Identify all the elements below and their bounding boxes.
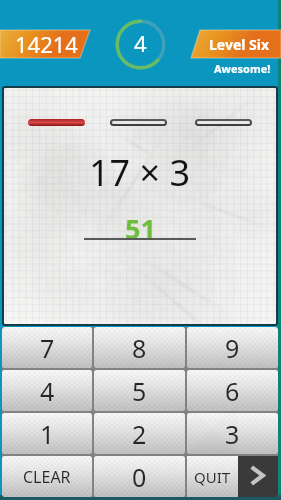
button[interactable]: Level Six (191, 30, 281, 58)
button[interactable]: Next (238, 456, 278, 497)
button[interactable]: 5 (94, 370, 185, 411)
staticText: 8 (132, 331, 147, 365)
staticText: Level Six (209, 35, 270, 54)
staticText: 51 (125, 210, 156, 247)
staticText: 3 (225, 417, 240, 451)
staticText: CLEAR (23, 466, 71, 488)
button[interactable]: 8 (94, 327, 185, 368)
staticText: 4 (134, 28, 147, 58)
button[interactable]: 3 (187, 413, 278, 454)
staticText: 5 (132, 374, 147, 408)
button[interactable]: 2 (94, 413, 185, 454)
staticText: 7 (40, 331, 55, 365)
button[interactable]: 6 (187, 370, 278, 411)
staticText: 2 (132, 417, 147, 451)
staticText: QUIT (194, 467, 231, 487)
staticText: 9 (225, 331, 240, 365)
button[interactable]: 1 (2, 413, 92, 454)
staticText: 0 (132, 460, 147, 494)
button[interactable]: CLEAR (2, 456, 92, 497)
button[interactable]: QUIT (187, 456, 238, 497)
staticText: 17 × 3 (89, 148, 191, 197)
button[interactable]: 0 (94, 456, 185, 497)
staticText: Awesome! (214, 61, 271, 76)
staticText: 4 (40, 374, 55, 408)
staticText: 6 (225, 374, 240, 408)
button[interactable]: 7 (2, 327, 92, 368)
button[interactable]: 14214 (0, 30, 90, 58)
button[interactable]: 4 (2, 370, 92, 411)
staticText: 1 (40, 417, 55, 451)
staticText: 14214 (15, 29, 78, 57)
button[interactable]: 9 (187, 327, 278, 368)
